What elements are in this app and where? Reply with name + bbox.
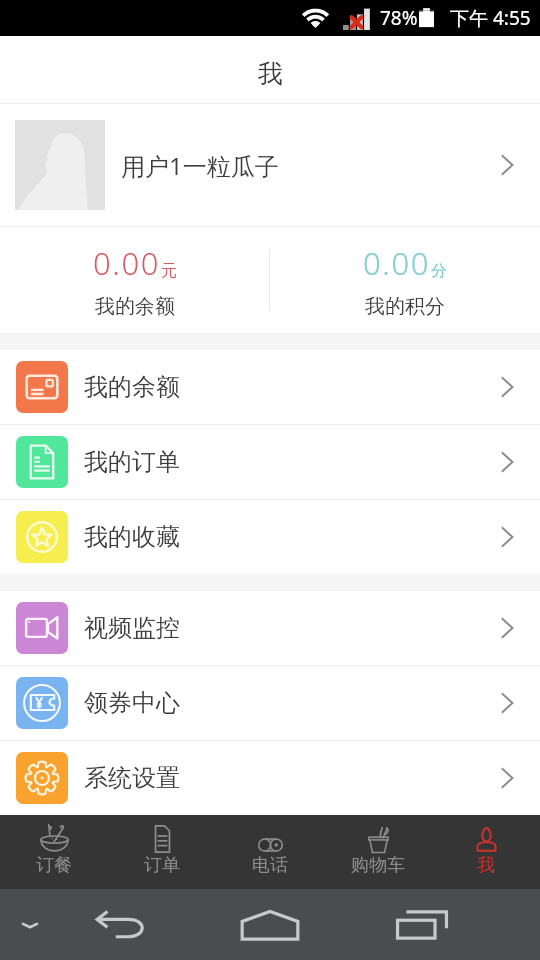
button[interactable]: 视频监控 [0,591,540,665]
staticText: 我的积分 [365,294,445,319]
button[interactable]: 领券中心 [0,666,540,740]
button[interactable]: Back [60,889,181,960]
staticText: 领券中心 [84,688,180,718]
button[interactable]: 我 [432,815,540,889]
button[interactable]: 0.00 [0,227,269,333]
staticText: 系统设置 [84,763,180,793]
button[interactable]: 我的余额 [0,350,540,424]
staticText: 元 [161,261,177,281]
staticText: 0.00 [363,242,431,284]
staticText: 我的余额 [84,372,180,402]
button[interactable]: 电话 [216,815,324,889]
button[interactable]: Home [181,889,358,960]
staticText: 78% [380,5,418,31]
button[interactable]: 0.00 [270,227,540,333]
button[interactable]: 购物车 [324,815,432,889]
button[interactable]: 用户1一粒瓜子 [0,104,540,226]
staticText: 我的余额 [95,294,175,319]
staticText: 订餐 [36,854,72,877]
button[interactable]: 我的收藏 [0,500,540,574]
button[interactable]: 系统设置 [0,741,540,815]
staticText: 电话 [252,854,288,877]
button[interactable]: Hide keyboard [0,889,60,960]
staticText: 分 [431,261,447,281]
button[interactable]: 我的订单 [0,425,540,499]
staticText: 购物车 [351,854,405,877]
staticText: 订单 [144,854,180,877]
staticText: 视频监控 [84,613,180,643]
staticText: 0.00 [93,242,161,284]
staticText: 我的订单 [84,447,180,477]
button[interactable]: 订餐 [0,815,108,889]
staticText: 我 [477,854,495,877]
button[interactable]: 订单 [108,815,216,889]
staticText: 我 [258,58,283,89]
button[interactable]: Recents [358,889,485,960]
staticText: 用户1一粒瓜子 [121,149,279,182]
staticText: 下午 4:55 [450,5,531,31]
staticText: 我的收藏 [84,522,180,552]
